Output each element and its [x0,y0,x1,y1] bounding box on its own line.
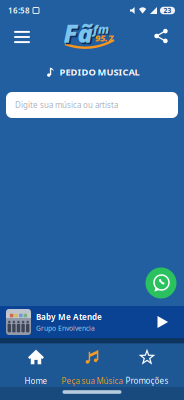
button[interactable]: Home [8,348,64,388]
button[interactable]: Menu [10,27,34,47]
staticText: Fã [63,16,92,50]
button[interactable]: Digite sua música ou artista [6,92,178,118]
button[interactable]: Promoções [119,348,175,388]
staticText: Peça sua Música [61,376,122,386]
button[interactable]: Play [156,314,170,330]
staticText: PEDIDO MUSICAL [59,66,139,78]
button[interactable]: WhatsApp [145,267,176,298]
staticText: 16:58 [8,5,30,16]
staticText: Home [24,376,47,386]
staticText: Grupo Envolvencia [36,324,95,332]
button[interactable]: Peça sua Música [57,348,127,388]
staticText: fm [93,21,109,37]
staticText: Digite sua música ou artista [15,100,118,110]
staticText: Fã [65,18,94,51]
staticText: fm [94,22,110,38]
staticText: 23 [163,6,171,15]
staticText: Promoções [125,375,168,386]
button[interactable]: Compartilhar [151,26,171,46]
staticText: 95.7 [95,32,113,44]
staticText: Baby Me Atende [36,311,102,322]
